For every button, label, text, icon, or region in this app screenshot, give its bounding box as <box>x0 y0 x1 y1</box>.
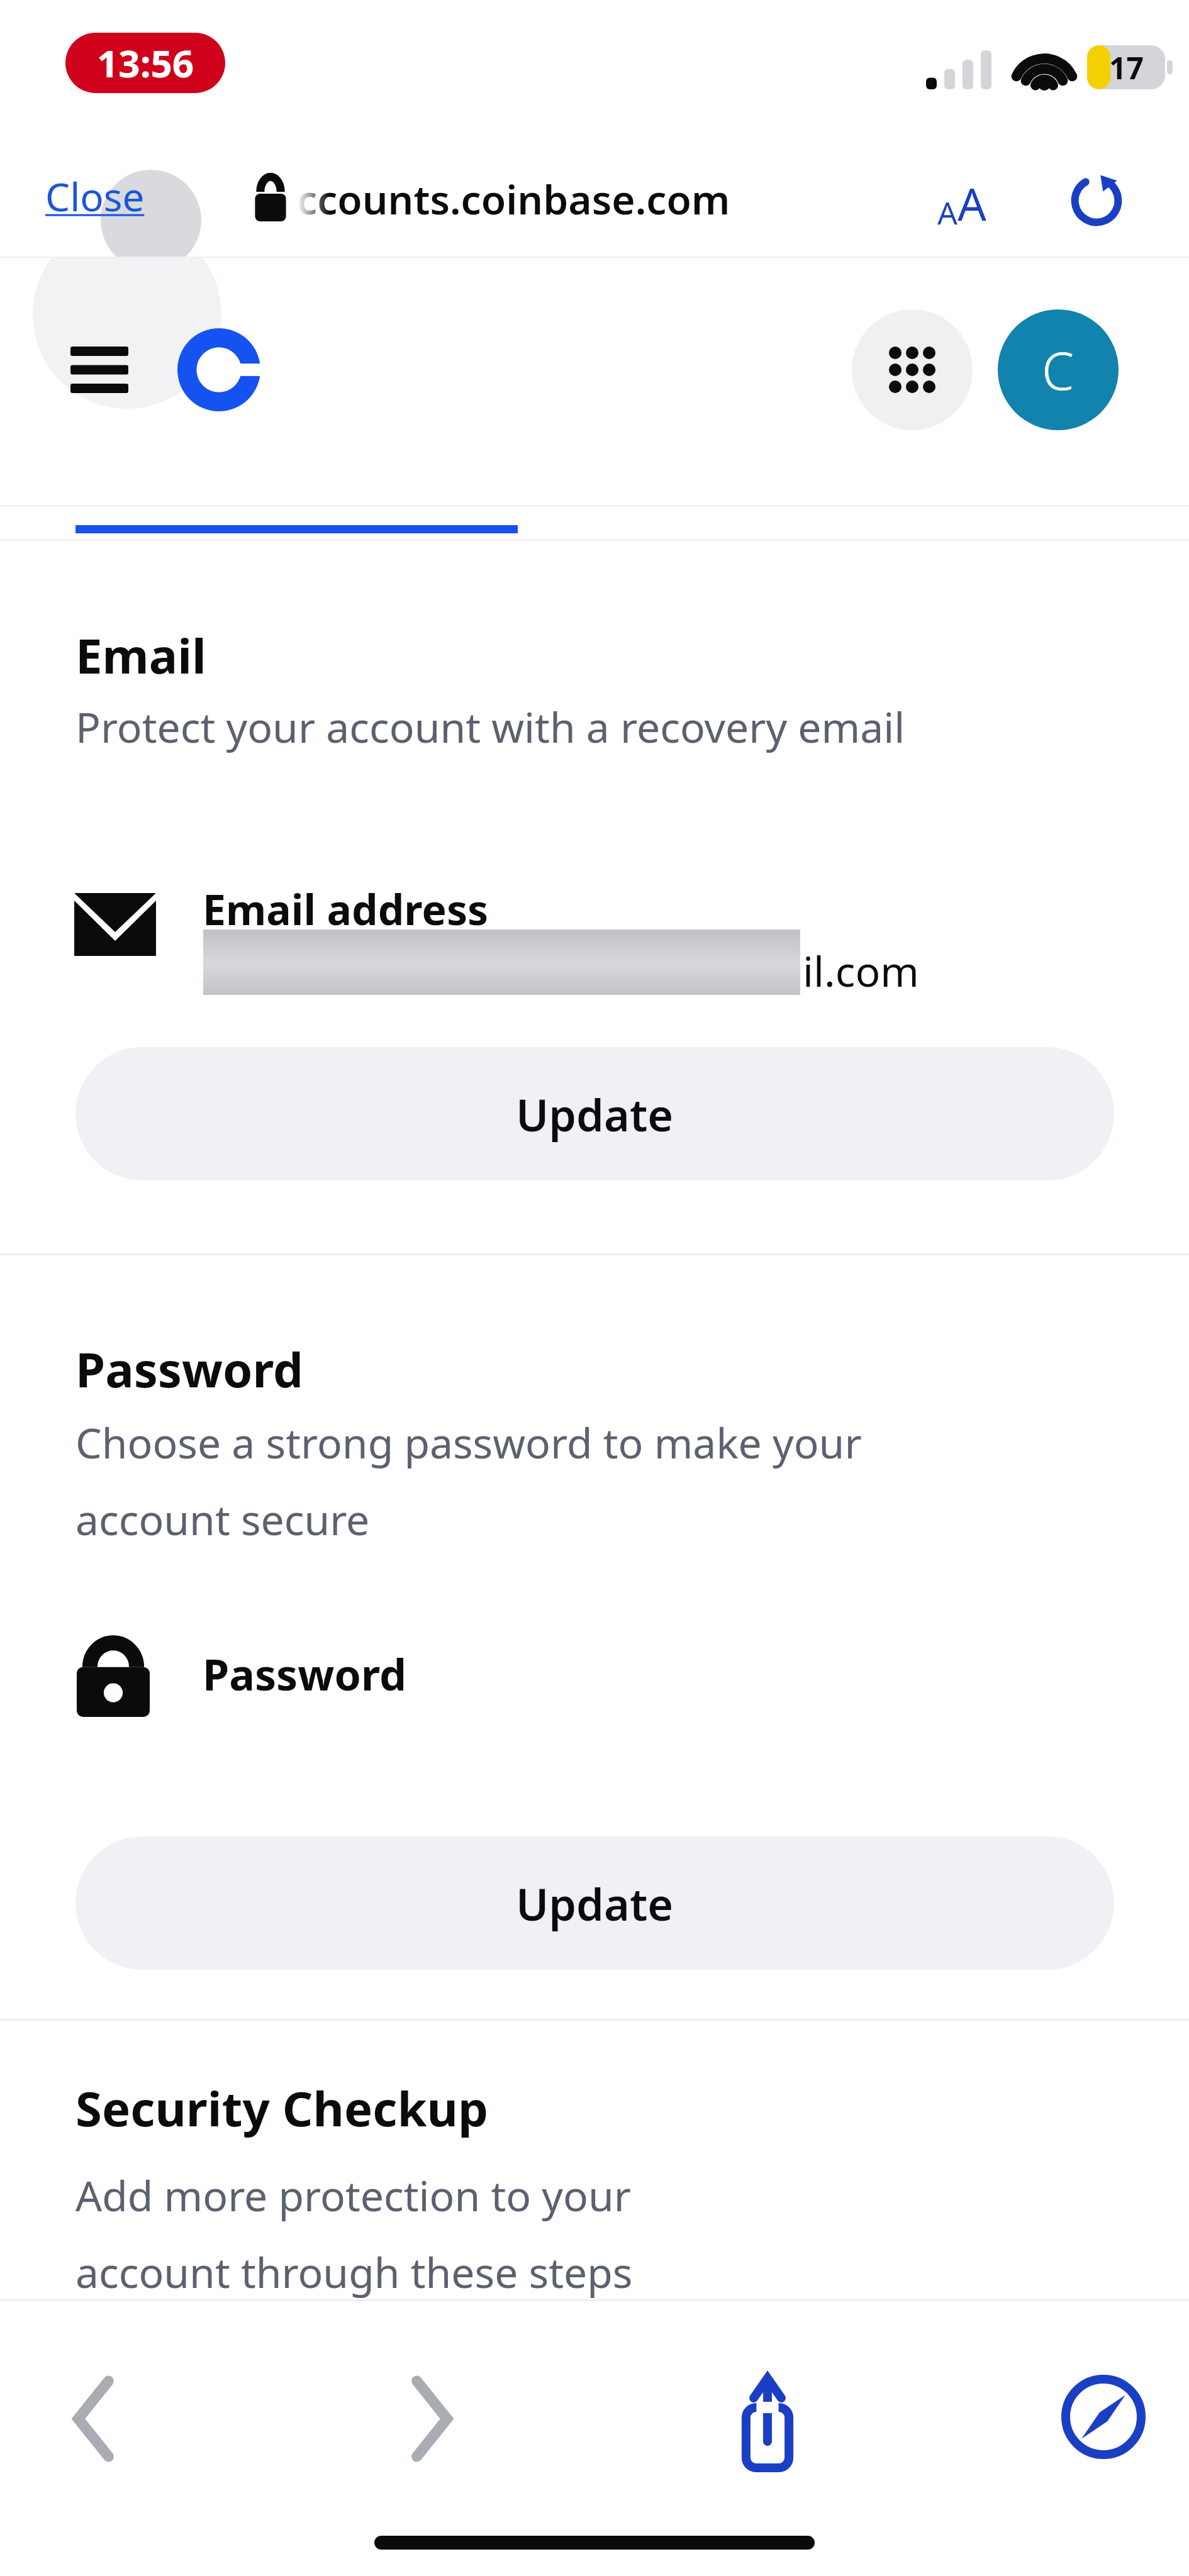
staticText: Choose a strong password to make your ac… <box>75 1414 862 1547</box>
staticText: Update <box>516 1874 674 1933</box>
button[interactable]: Share <box>733 2373 802 2468</box>
button[interactable]: Update <box>75 1047 1114 1180</box>
button[interactable]: Forward <box>406 2381 456 2457</box>
button[interactable]: Update <box>75 1836 1114 1970</box>
staticText: Email address <box>203 880 489 937</box>
button[interactable]: Account <box>998 309 1119 430</box>
staticText: Close <box>45 170 145 223</box>
staticText: 13:56 <box>97 37 194 89</box>
staticText: C <box>1042 335 1075 405</box>
staticText: A <box>957 172 987 234</box>
button[interactable]: Reload <box>1069 171 1124 225</box>
button[interactable]: Apps <box>852 309 973 430</box>
staticText: Email <box>75 623 206 688</box>
staticText: Security Checkup <box>75 2075 489 2141</box>
staticText: 17 <box>1109 47 1144 88</box>
staticText: Add more protection to your account thro… <box>75 2167 633 2299</box>
staticText: il.com <box>803 942 920 999</box>
staticText: A <box>937 191 957 234</box>
button[interactable]: Bookmarks <box>1060 2373 1147 2460</box>
button[interactable]: Menu <box>70 347 128 393</box>
staticText: ccounts.coinbase.com <box>297 172 730 226</box>
button[interactable]: Text size <box>937 172 987 234</box>
staticText: Protect your account with a recovery ema… <box>75 698 905 755</box>
button[interactable]: Close <box>38 162 152 230</box>
staticText: Password <box>75 1336 304 1402</box>
staticText: Update <box>516 1084 674 1144</box>
button[interactable]: Back <box>69 2381 120 2457</box>
staticText: Password <box>203 1645 406 1703</box>
